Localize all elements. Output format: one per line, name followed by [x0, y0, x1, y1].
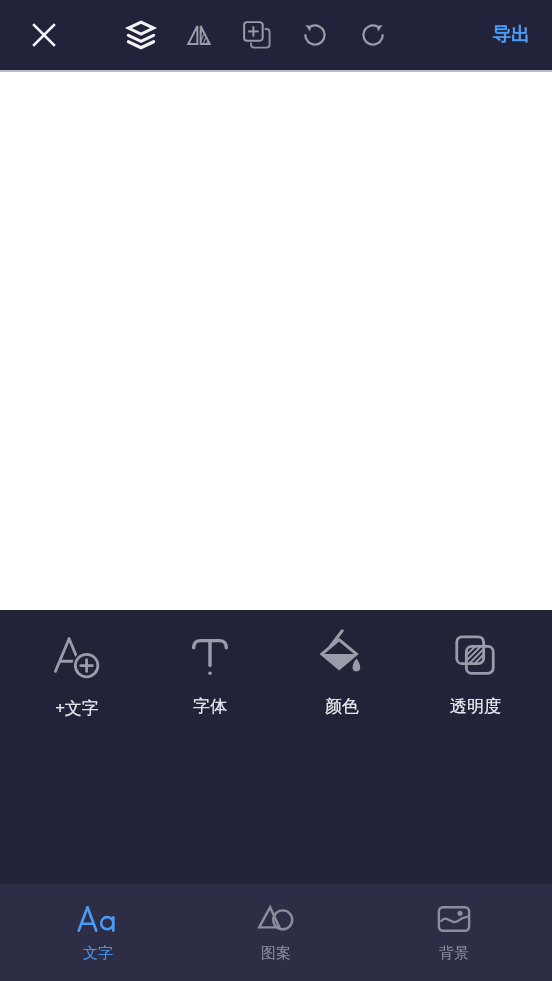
staticText: 字体	[193, 696, 227, 717]
button[interactable]: Redo	[350, 12, 396, 58]
button[interactable]: Layers	[118, 12, 164, 58]
button[interactable]: 颜色	[287, 622, 397, 725]
button[interactable]: Undo	[292, 12, 338, 58]
staticText: 背景	[439, 944, 469, 963]
staticText: 文字	[83, 944, 113, 963]
button[interactable]: 文字	[18, 892, 178, 967]
button[interactable]: 背景	[374, 892, 534, 967]
button[interactable]: 字体	[155, 622, 265, 725]
button[interactable]: 导出	[482, 15, 540, 55]
button[interactable]: +文字	[22, 622, 132, 727]
button[interactable]: Mirror	[176, 12, 222, 58]
staticText: 导出	[492, 23, 530, 47]
button[interactable]: 图案	[196, 892, 356, 967]
button[interactable]: Close	[18, 9, 70, 61]
staticText: 图案	[261, 944, 291, 963]
staticText: 颜色	[325, 696, 359, 717]
staticText: +文字	[55, 696, 99, 719]
button[interactable]: Duplicate	[234, 12, 280, 58]
button[interactable]: 透明度	[420, 622, 530, 725]
staticText: 透明度	[450, 696, 501, 717]
